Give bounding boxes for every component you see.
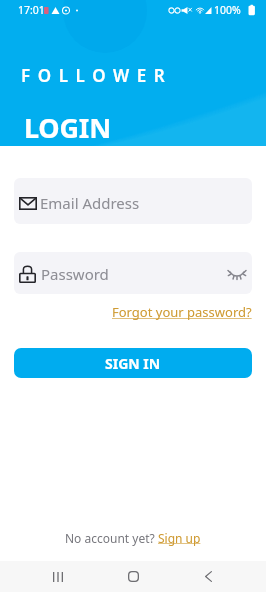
staticText: Password <box>41 264 109 284</box>
button[interactable]: Password <box>14 252 252 294</box>
button[interactable]: SIGN IN <box>14 348 252 378</box>
staticText: Forgot your password? <box>112 303 252 321</box>
staticText: Email Address <box>40 193 140 213</box>
button[interactable]: Sign up <box>158 530 201 546</box>
button[interactable]: Home <box>96 561 171 592</box>
staticText: 17:01 <box>18 3 45 17</box>
staticText: LOGIN <box>24 109 111 146</box>
button[interactable]: Forgot your password? <box>112 303 266 321</box>
button[interactable]: Email Address <box>14 178 252 224</box>
staticText: No account yet? <box>65 530 158 546</box>
staticText: Sign up <box>158 530 201 546</box>
button[interactable]: Back <box>171 561 246 592</box>
button[interactable]: Recent apps <box>20 561 96 592</box>
staticText: SIGN IN <box>105 354 161 373</box>
button[interactable]: Show password <box>224 259 250 289</box>
staticText: FOLLOWER <box>21 64 173 87</box>
staticText: 100% <box>214 3 241 17</box>
